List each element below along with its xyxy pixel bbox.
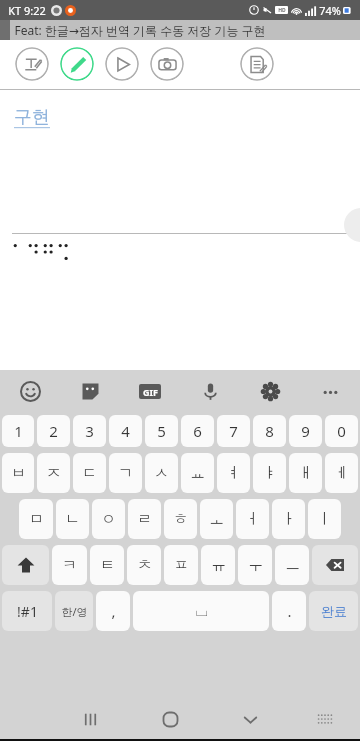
button[interactable]: ⌴ xyxy=(133,591,269,631)
staticText: 5 xyxy=(157,421,166,441)
staticText: Feat: 한글→점자 번역 기록 수동 저장 기능 구현 xyxy=(14,22,266,38)
button[interactable]: ㅠ xyxy=(201,545,235,585)
button[interactable]: Shift xyxy=(2,545,49,585)
button[interactable]: ㅓ xyxy=(236,499,269,539)
staticText: ㅎ xyxy=(173,510,188,529)
button[interactable]: ㅂ xyxy=(2,453,34,493)
staticText: ㅔ xyxy=(334,464,349,483)
button[interactable]: 완료 xyxy=(309,591,358,631)
staticText: KT 9:22 xyxy=(8,3,46,18)
button[interactable]: ㅈ xyxy=(37,453,70,493)
button[interactable]: ㄴ xyxy=(56,499,89,539)
staticText: 구현 xyxy=(14,106,50,129)
button[interactable]: Sticker xyxy=(60,370,120,412)
button[interactable]: 8 xyxy=(253,415,286,447)
button[interactable]: ㅏ xyxy=(272,499,305,539)
button[interactable]: ㅣ xyxy=(308,499,341,539)
button[interactable]: !#1 xyxy=(2,591,52,631)
button[interactable]: Emoji xyxy=(0,370,60,412)
button[interactable]: ㅍ xyxy=(164,545,198,585)
button[interactable]: Handle xyxy=(344,208,360,242)
staticText: HD xyxy=(278,7,286,14)
staticText: ㅕ xyxy=(226,464,241,483)
button[interactable]: Recents xyxy=(50,697,130,741)
staticText: 완료 xyxy=(321,603,347,619)
staticText: 2 xyxy=(49,421,58,441)
button[interactable]: 4 xyxy=(109,415,142,447)
button[interactable]: ㅋ xyxy=(52,545,87,585)
button[interactable]: Hide keyboard xyxy=(210,697,290,741)
staticText: ㅓ xyxy=(245,510,260,529)
staticText: ㅠ xyxy=(211,556,226,575)
staticText: ⌴ xyxy=(195,604,208,619)
button[interactable]: . xyxy=(272,591,306,631)
button[interactable]: ㅡ xyxy=(275,545,309,585)
staticText: ㄹ xyxy=(137,510,152,529)
staticText: 3 xyxy=(85,421,94,441)
button[interactable]: ㅛ xyxy=(181,453,214,493)
staticText: 4 xyxy=(121,421,130,441)
staticText: ㅜ xyxy=(248,556,263,575)
button[interactable]: 2 xyxy=(37,415,70,447)
staticText: 8 xyxy=(265,421,274,441)
button[interactable]: ㅅ xyxy=(145,453,178,493)
staticText: 74% xyxy=(319,3,341,18)
button[interactable]: Text tool xyxy=(15,47,49,81)
button[interactable]: ㅜ xyxy=(238,545,272,585)
button[interactable]: ㄱ xyxy=(109,453,142,493)
staticText: 9 xyxy=(301,421,310,441)
staticText: ㄷ xyxy=(82,464,97,483)
button[interactable]: Camera xyxy=(150,47,184,81)
button[interactable]: ㅌ xyxy=(90,545,124,585)
button[interactable]: 6 xyxy=(181,415,214,447)
staticText: ㅌ xyxy=(100,556,115,575)
button[interactable]: Play xyxy=(105,47,139,81)
button[interactable]: 3 xyxy=(73,415,106,447)
staticText: ㅍ xyxy=(174,556,189,575)
staticText: ㅑ xyxy=(262,464,277,483)
button[interactable]: 0 xyxy=(325,415,358,447)
staticText: ㅛ xyxy=(190,464,205,483)
staticText: ㅈ xyxy=(46,464,61,483)
staticText: 6 xyxy=(193,421,202,441)
staticText: ㅋ xyxy=(62,556,77,575)
button[interactable]: ㅑ xyxy=(253,453,286,493)
button[interactable]: GIF xyxy=(120,370,180,412)
staticText: ㅡ xyxy=(285,556,300,575)
button[interactable]: More options xyxy=(300,370,360,412)
button[interactable]: ㅔ xyxy=(325,453,358,493)
button[interactable]: ㅁ xyxy=(19,499,53,539)
button[interactable]: Keyboard settings xyxy=(240,370,300,412)
staticText: ㅅ xyxy=(154,464,169,483)
staticText: ㅏ xyxy=(281,510,296,529)
button[interactable]: 5 xyxy=(145,415,178,447)
button[interactable]: Switch keyboard xyxy=(290,697,360,741)
button[interactable]: 1 xyxy=(2,415,34,447)
staticText: ㄱ xyxy=(118,464,133,483)
button[interactable]: 한/영 xyxy=(55,591,93,631)
button[interactable]: ㄹ xyxy=(128,499,161,539)
button[interactable]: ㄷ xyxy=(73,453,106,493)
button[interactable]: 7 xyxy=(217,415,250,447)
button[interactable]: Voice input xyxy=(180,370,240,412)
staticText: , xyxy=(111,601,116,621)
staticText: 한/영 xyxy=(61,604,88,619)
staticText: ㄴ xyxy=(65,510,80,529)
button[interactable]: ㅗ xyxy=(200,499,233,539)
staticText: ㅂ xyxy=(11,464,26,483)
button[interactable]: Home xyxy=(130,697,210,741)
button[interactable]: ㅐ xyxy=(289,453,322,493)
button[interactable]: , xyxy=(96,591,130,631)
button[interactable]: Notes xyxy=(240,47,274,81)
button[interactable]: Backspace xyxy=(312,545,358,585)
button[interactable]: ㅎ xyxy=(164,499,197,539)
button[interactable]: 9 xyxy=(289,415,322,447)
button[interactable]: ㅇ xyxy=(92,499,125,539)
button[interactable]: Pen tool xyxy=(60,47,94,81)
staticText: 7 xyxy=(229,421,238,441)
staticText: . xyxy=(287,601,292,621)
staticText: 0 xyxy=(337,421,346,441)
button[interactable]: ㅕ xyxy=(217,453,250,493)
staticText: ㅐ xyxy=(298,464,313,483)
button[interactable]: ㅊ xyxy=(127,545,161,585)
